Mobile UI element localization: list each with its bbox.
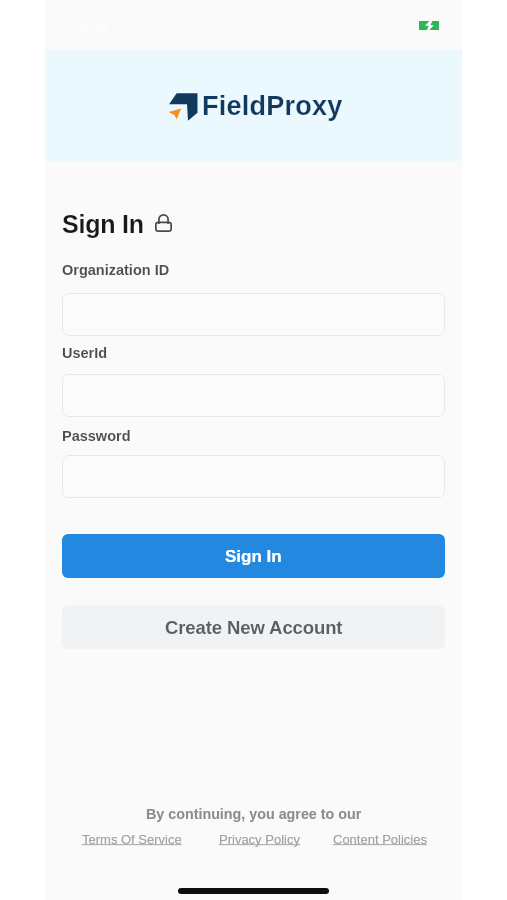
button[interactable]: Create New Account (62, 605, 445, 649)
button[interactable] (62, 455, 445, 498)
other: Secure sign in (155, 214, 172, 232)
button[interactable] (62, 293, 445, 336)
button[interactable]: Terms Of Service (82, 832, 182, 847)
staticText: Sign In (225, 547, 282, 566)
staticText: Create New Account (165, 617, 343, 638)
button[interactable]: Privacy Policy (219, 832, 300, 847)
button[interactable]: Content Policies (333, 832, 427, 847)
button[interactable]: Sign In (62, 534, 445, 578)
staticText: By continuing, you agree to our (146, 806, 362, 822)
staticText: Sign In (62, 210, 144, 238)
staticText: FieldProxy (202, 91, 343, 121)
staticText: UserId (62, 345, 108, 361)
button[interactable] (62, 374, 445, 417)
staticText: Organization ID (62, 262, 170, 278)
staticText: Password (62, 428, 131, 444)
